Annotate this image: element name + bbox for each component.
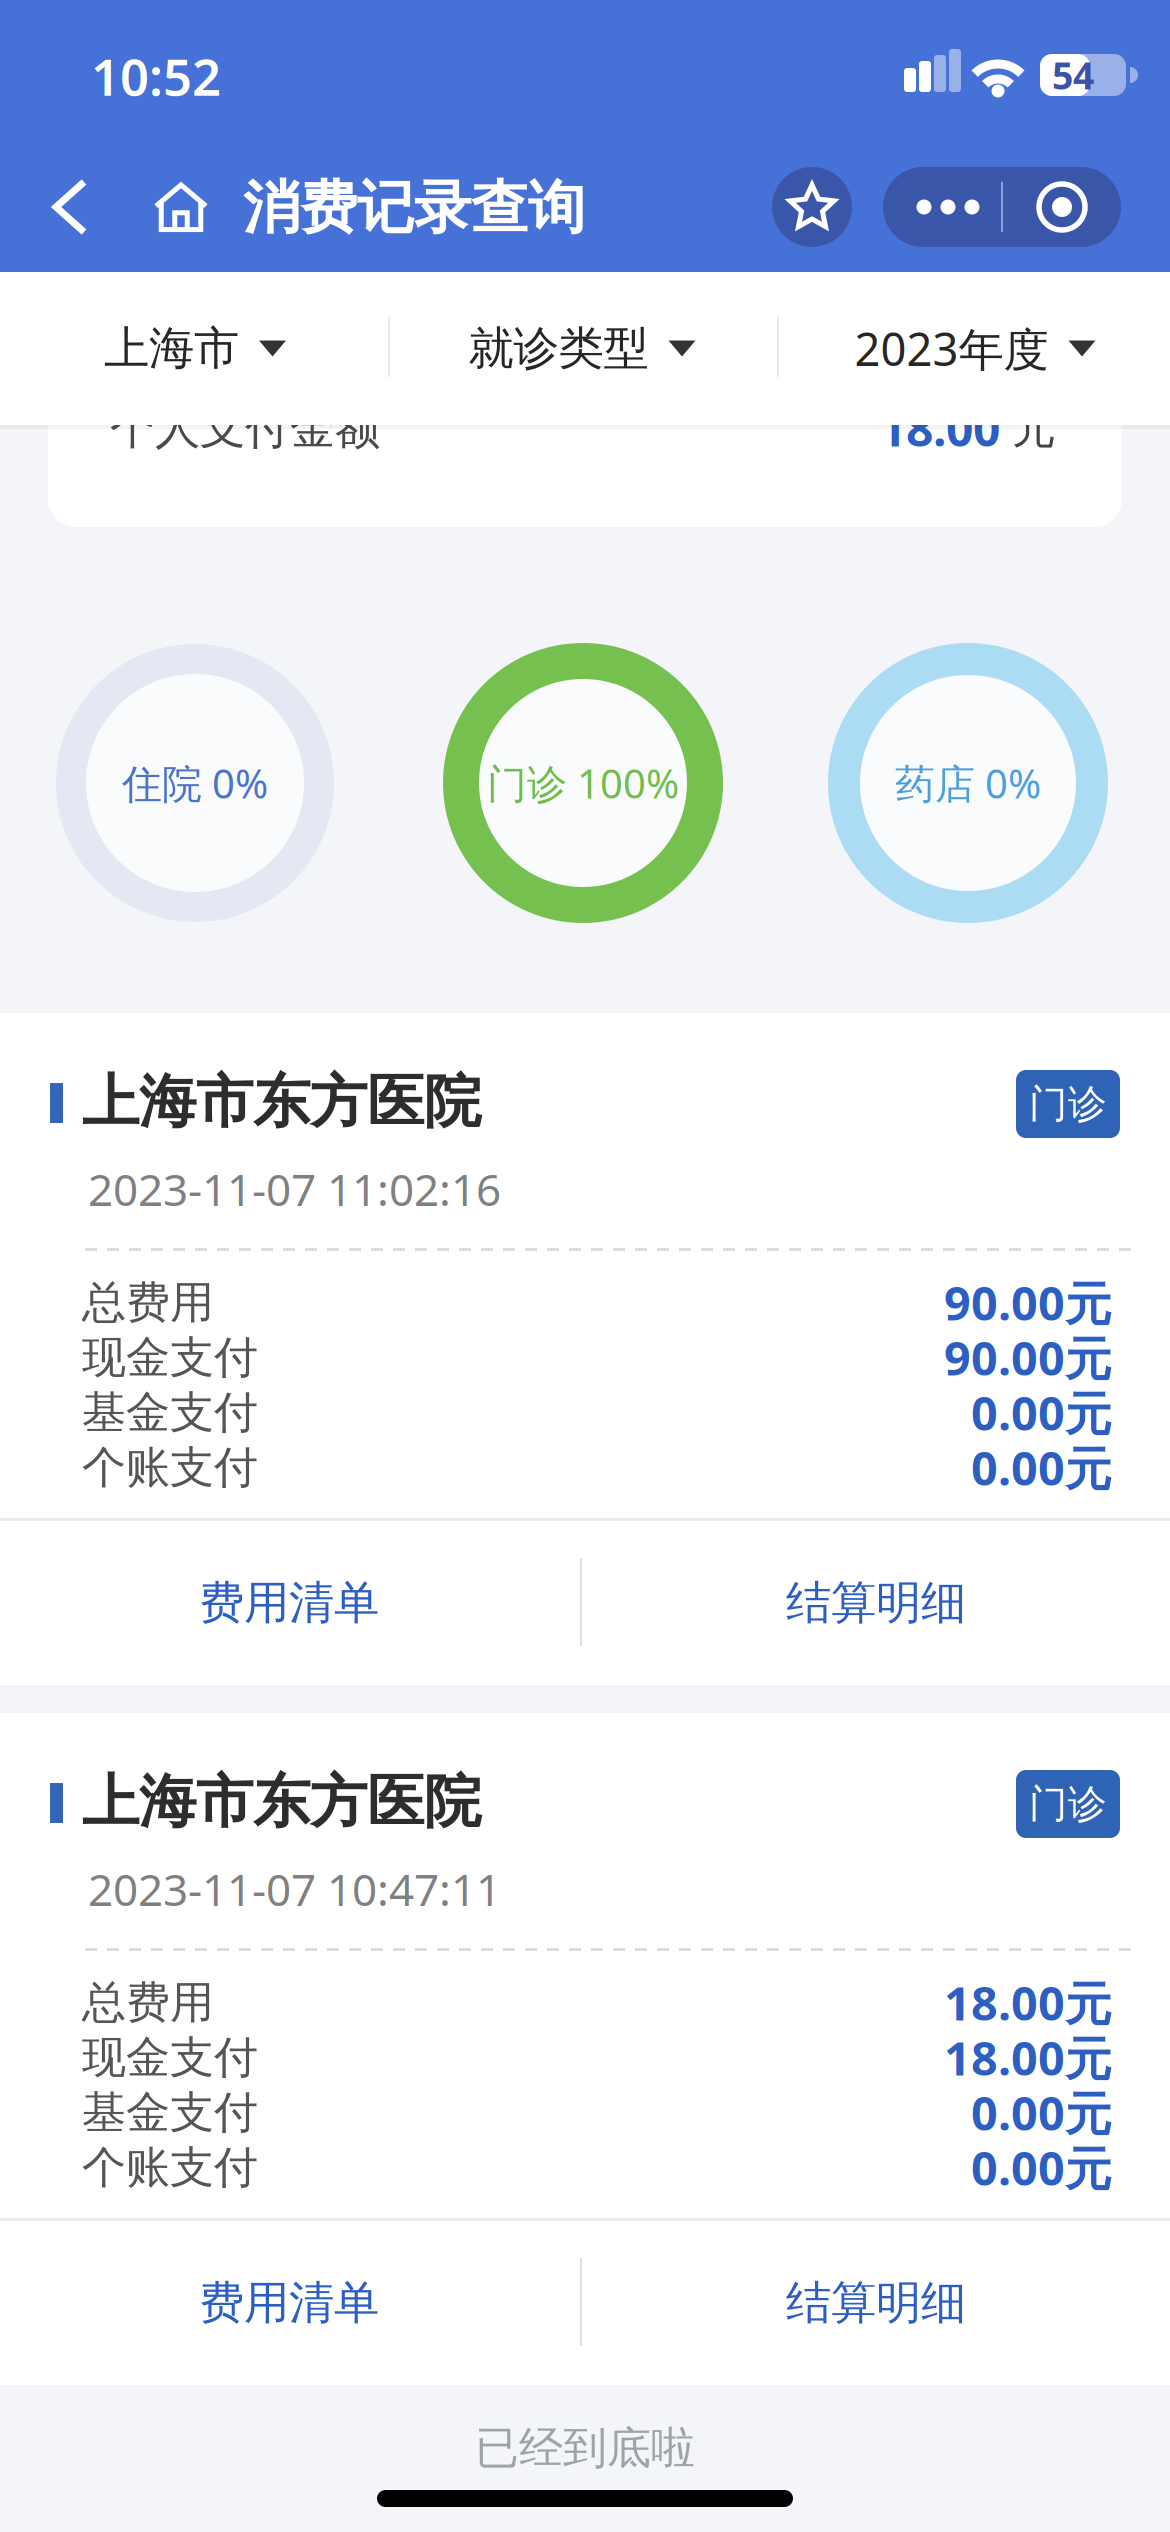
button[interactable]: 就诊类型 [402, 272, 762, 425]
staticText: 现金支付 [82, 1330, 258, 1384]
staticText: 上海市东方医院 [82, 1067, 481, 1137]
staticText: 基金支付 [82, 2085, 258, 2139]
staticText: 个账支付 [82, 2140, 258, 2194]
button[interactable]: 2023年度 [790, 272, 1160, 425]
staticText: 54 [1052, 50, 1094, 100]
staticText: 费用清单 [199, 1575, 379, 1631]
staticText: 消费记录查询 [243, 173, 585, 243]
staticText: 基金支付 [82, 1385, 258, 1439]
staticText: 2023-11-07 11:02:16 [88, 1160, 501, 1218]
button[interactable]: 上海市 [30, 272, 360, 425]
button[interactable]: Close [1003, 167, 1121, 247]
staticText: 药店 0% [895, 756, 1041, 809]
staticText: 元 [1012, 401, 1056, 455]
staticText: 0.00元 [971, 1381, 1112, 1443]
staticText: 结算明细 [786, 1575, 966, 1631]
staticText: 总费用 [82, 1275, 214, 1329]
button[interactable]: Home [143, 171, 219, 243]
staticText: 结算明细 [786, 2275, 966, 2331]
staticText: 0.00元 [971, 1436, 1112, 1498]
staticText: 上海市东方医院 [82, 1767, 481, 1837]
staticText: 18.00元 [944, 1971, 1112, 2033]
staticText: 住院 0% [122, 756, 268, 809]
button[interactable]: 结算明细 [582, 2221, 1170, 2385]
staticText: 90.00元 [944, 1326, 1112, 1388]
staticText: 个账支付 [82, 1440, 258, 1494]
staticText: 上海市 [104, 321, 239, 376]
button[interactable]: More [883, 167, 1001, 247]
staticText: 2023-11-07 10:47:11 [88, 1860, 501, 1918]
staticText: 现金支付 [82, 2030, 258, 2084]
staticText: 门诊 100% [487, 756, 679, 809]
staticText: 个人支付金额 [110, 400, 380, 456]
button[interactable]: 费用清单 [0, 2221, 578, 2385]
staticText: 已经到底啦 [475, 2421, 695, 2475]
staticText: 0.00元 [971, 2136, 1112, 2198]
staticText: 门诊 [1029, 1080, 1107, 1128]
button[interactable]: 结算明细 [582, 1521, 1170, 1685]
staticText: 就诊类型 [468, 321, 648, 376]
staticText: 2023年度 [854, 318, 1048, 379]
staticText: 18.00 [879, 396, 1000, 460]
button[interactable]: Back [42, 168, 98, 246]
button[interactable]: Favorite [772, 167, 852, 247]
button[interactable]: 费用清单 [0, 1521, 578, 1685]
staticText: 18.00元 [944, 2026, 1112, 2088]
staticText: 费用清单 [199, 2275, 379, 2331]
staticText: 总费用 [82, 1975, 214, 2029]
staticText: 10:52 [91, 42, 221, 110]
staticText: 0.00元 [971, 2081, 1112, 2143]
staticText: 90.00元 [944, 1271, 1112, 1333]
staticText: 门诊 [1029, 1780, 1107, 1828]
